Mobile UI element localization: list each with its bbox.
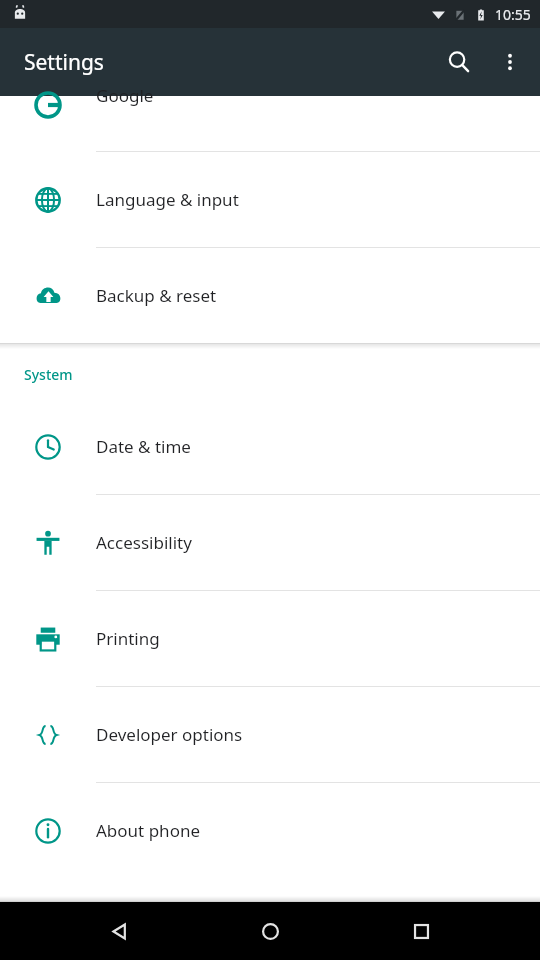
staticText: About phone <box>96 819 201 842</box>
button[interactable]: Recents <box>389 902 453 960</box>
button[interactable]: Language & input <box>0 152 540 247</box>
button[interactable]: Developer options <box>0 687 540 782</box>
button[interactable]: Date & time <box>0 399 540 494</box>
staticText: Language & input <box>96 188 239 211</box>
staticText: Accessibility <box>96 531 192 554</box>
button[interactable]: Backup & reset <box>0 248 540 343</box>
staticText: Developer options <box>96 723 243 746</box>
button[interactable]: Search <box>435 38 483 86</box>
button[interactable]: Google <box>0 96 540 151</box>
staticText: Date & time <box>96 435 191 458</box>
staticText: Printing <box>96 627 160 650</box>
staticText: Backup & reset <box>96 284 217 307</box>
button[interactable]: About phone <box>0 783 540 878</box>
button[interactable]: Home <box>238 902 302 960</box>
staticText: 10:55 <box>495 5 531 24</box>
staticText: Google <box>96 84 154 107</box>
button[interactable]: Accessibility <box>0 495 540 590</box>
button[interactable]: Printing <box>0 591 540 686</box>
button[interactable]: More options <box>486 38 534 86</box>
button[interactable]: Back <box>87 902 151 960</box>
staticText: System <box>24 365 73 384</box>
staticText: Settings <box>24 48 104 77</box>
